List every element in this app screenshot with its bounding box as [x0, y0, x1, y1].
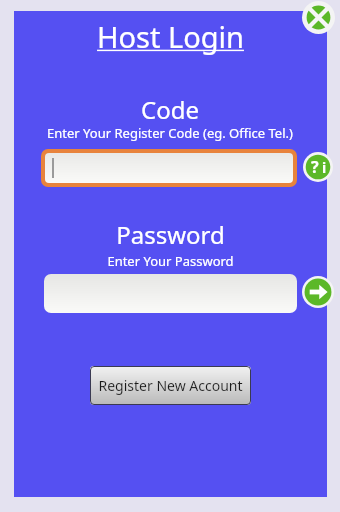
button[interactable]: Submit: [302, 276, 334, 308]
button[interactable]: Help: [303, 152, 333, 182]
staticText: Host Login: [97, 17, 244, 56]
staticText: Enter Your Password: [107, 252, 234, 270]
button[interactable]: [45, 153, 293, 183]
staticText: Enter Your Register Code (eg. Office Tel…: [47, 124, 293, 142]
staticText: i: [322, 158, 327, 177]
button[interactable]: [44, 274, 297, 313]
button[interactable]: Host Login: [0, 17, 340, 56]
staticText: ?: [311, 156, 319, 178]
staticText: Password: [116, 218, 225, 251]
staticText: Register New Account: [98, 376, 243, 395]
button[interactable]: Register New Account: [90, 366, 251, 405]
staticText: Code: [141, 93, 199, 126]
button[interactable]: Close: [302, 1, 335, 34]
